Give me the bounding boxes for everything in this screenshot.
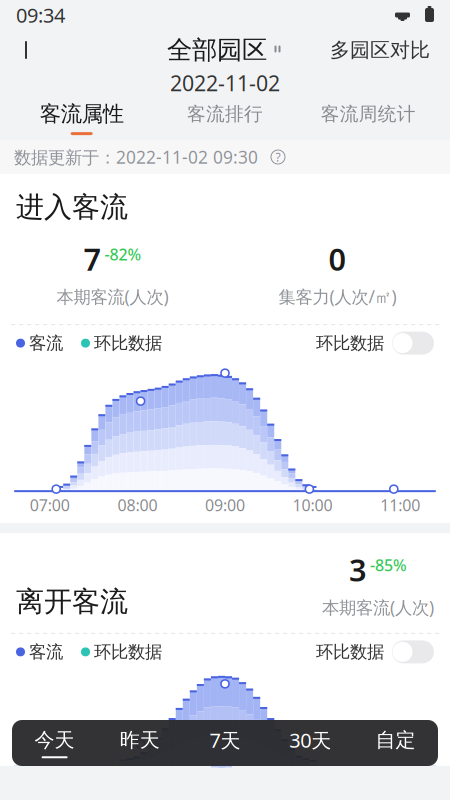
staticText: 09:00 (205, 494, 245, 516)
staticText: -85% (370, 554, 407, 576)
button[interactable]: 环比数据 (316, 326, 434, 360)
staticText: 客流排行 (187, 102, 263, 125)
staticText: 10:00 (293, 494, 333, 516)
staticText: 今天 (35, 728, 75, 752)
staticText: 09:34 (16, 2, 65, 28)
staticText: 本期客流(人次) (56, 285, 168, 308)
staticText: 自定 (375, 728, 415, 752)
button[interactable]: 全部园区 (157, 30, 293, 70)
staticText: 环比数据 (94, 332, 162, 354)
button[interactable]: 多园区对比 (316, 30, 444, 70)
staticText: 集客力(人次/㎡) (278, 285, 396, 308)
staticText: 2022-11-02 (170, 69, 280, 97)
button[interactable]: 自定 (353, 720, 438, 766)
staticText: 全部园区 (167, 34, 267, 65)
staticText: 环比数据 (316, 641, 384, 662)
staticText: 3 (349, 549, 367, 590)
button[interactable]: 客流周统计 (297, 96, 440, 140)
staticText: 多园区对比 (330, 38, 430, 62)
staticText: 环比数据 (94, 641, 162, 662)
button[interactable]: Help (265, 144, 291, 170)
staticText: 客流 (29, 641, 63, 662)
staticText: 数据更新于：2022-11-02 09:30 (14, 145, 258, 168)
button[interactable]: 7天 (182, 720, 268, 766)
button[interactable]: 30天 (268, 720, 353, 766)
staticText: 离开客流 (16, 584, 128, 619)
staticText: 0 (328, 238, 346, 279)
button[interactable]: Back (6, 30, 50, 70)
staticText: 进入客流 (16, 190, 128, 224)
staticText: 昨天 (120, 728, 160, 752)
staticText: 7 (83, 238, 101, 279)
staticText: -82% (104, 244, 141, 265)
staticText: 本期客流(人次) (322, 596, 434, 619)
staticText: 08:00 (117, 494, 157, 516)
staticText: 客流周统计 (321, 102, 416, 125)
staticText: 环比数据 (316, 332, 384, 354)
button[interactable]: 今天 (12, 720, 97, 766)
button[interactable]: 客流排行 (153, 96, 297, 140)
staticText: ? (275, 149, 280, 165)
button[interactable]: 环比数据 (316, 635, 434, 669)
button[interactable]: 昨天 (97, 720, 182, 766)
staticText: 07:00 (30, 494, 70, 516)
button[interactable]: 客流属性 (10, 96, 153, 140)
staticText: 30天 (289, 727, 331, 753)
staticText: 客流 (29, 332, 63, 354)
staticText: 客流属性 (40, 101, 124, 127)
staticText: 11:00 (380, 494, 420, 516)
staticText: 7天 (209, 727, 240, 753)
